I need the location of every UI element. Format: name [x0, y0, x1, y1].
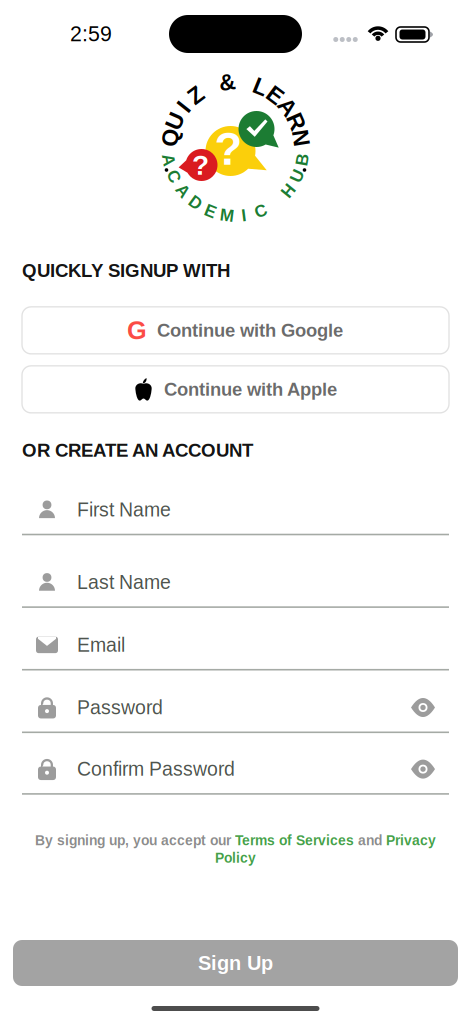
button[interactable]: G [22, 307, 449, 354]
staticText: Last Name [77, 571, 171, 593]
staticText: C [229, 207, 241, 225]
staticText: ? [192, 149, 209, 181]
staticText: QUICKLY SIGNUP WITH [22, 260, 230, 281]
staticText: and [354, 833, 386, 848]
staticText [232, 69, 238, 95]
staticText: A [227, 69, 243, 95]
staticText: I [233, 207, 238, 225]
staticText: & [227, 69, 243, 95]
button[interactable]: Privacy [386, 833, 436, 848]
staticText: By signing up, you accept our [35, 833, 235, 848]
staticText: H [229, 207, 241, 225]
staticText: U [229, 207, 241, 225]
staticText [233, 207, 238, 225]
staticText: E [228, 69, 243, 95]
button[interactable]: Confirm Password [22, 745, 449, 795]
button[interactable]: Terms of Services [235, 833, 354, 848]
staticText: Sign Up [198, 952, 273, 974]
staticText: Z [228, 69, 242, 95]
staticText: Terms of Services [235, 833, 354, 848]
staticText: I [232, 69, 238, 95]
staticText: Policy [215, 850, 256, 866]
button[interactable]: Email [22, 621, 449, 670]
staticText: Confirm Password [77, 758, 235, 780]
staticText: D [229, 207, 241, 225]
staticText: N [227, 69, 243, 95]
staticText: C [229, 207, 241, 225]
staticText: 2:59 [70, 22, 112, 46]
staticText: Continue with Google [157, 320, 343, 341]
staticText: G [127, 316, 147, 344]
staticText: ? [214, 124, 242, 174]
staticText: E [230, 207, 241, 225]
staticText: Q [226, 69, 244, 95]
button[interactable]: Sign Up [13, 940, 458, 986]
staticText: A [229, 207, 241, 225]
staticText: U [227, 69, 243, 95]
staticText: First Name [77, 499, 171, 520]
button[interactable]: Continue with Apple [22, 366, 449, 413]
staticText: A [229, 207, 241, 225]
button[interactable]: Last Name [22, 558, 449, 608]
staticText: B [229, 207, 241, 225]
staticText: Continue with Apple [164, 379, 337, 400]
staticText [232, 69, 238, 95]
staticText: OR CREATE AN ACCOUNT [22, 440, 253, 461]
staticText: Email [77, 634, 125, 656]
button[interactable]: First Name [22, 486, 449, 535]
button[interactable]: Policy [215, 850, 256, 866]
staticText: L [228, 69, 242, 95]
staticText: Privacy [386, 833, 436, 848]
staticText: Password [77, 697, 163, 718]
button[interactable]: Password [22, 683, 449, 733]
staticText: R [227, 69, 243, 95]
staticText: M [228, 207, 242, 225]
